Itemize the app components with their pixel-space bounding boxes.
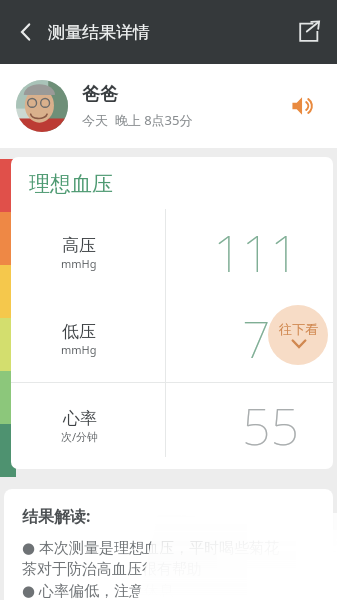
staticText: 爸爸 bbox=[82, 83, 118, 106]
staticText: 心率 bbox=[63, 408, 97, 429]
staticText: ● 本次测量是理想血压，平时喝些菊花 茶对于防治高血压很有帮助 bbox=[22, 537, 279, 578]
staticText: 高压 bbox=[62, 235, 96, 256]
button[interactable]: 往下看 bbox=[268, 305, 328, 365]
button[interactable]: Play audio bbox=[283, 86, 323, 126]
staticText: mmHg bbox=[61, 256, 97, 271]
staticText: 结果解读: bbox=[22, 505, 91, 527]
button[interactable]: Back bbox=[4, 10, 48, 54]
staticText: 111 bbox=[213, 219, 299, 287]
button[interactable]: 理想血压 bbox=[11, 157, 333, 469]
staticText: 次/分钟 bbox=[61, 429, 99, 444]
staticText: 往下看 bbox=[279, 321, 318, 337]
button[interactable]: Share bbox=[287, 10, 331, 54]
staticText: 55 bbox=[242, 392, 299, 460]
staticText: 理想血压 bbox=[29, 171, 113, 197]
staticText: ● 心率偏低，注意休息 bbox=[22, 580, 174, 600]
staticText: 低压 bbox=[62, 321, 96, 342]
staticText: 今天 晚上 8点35分 bbox=[82, 111, 193, 129]
staticText: 74 bbox=[242, 305, 299, 373]
staticText: 测量结果详情 bbox=[48, 22, 150, 43]
staticText: mmHg bbox=[61, 342, 97, 357]
